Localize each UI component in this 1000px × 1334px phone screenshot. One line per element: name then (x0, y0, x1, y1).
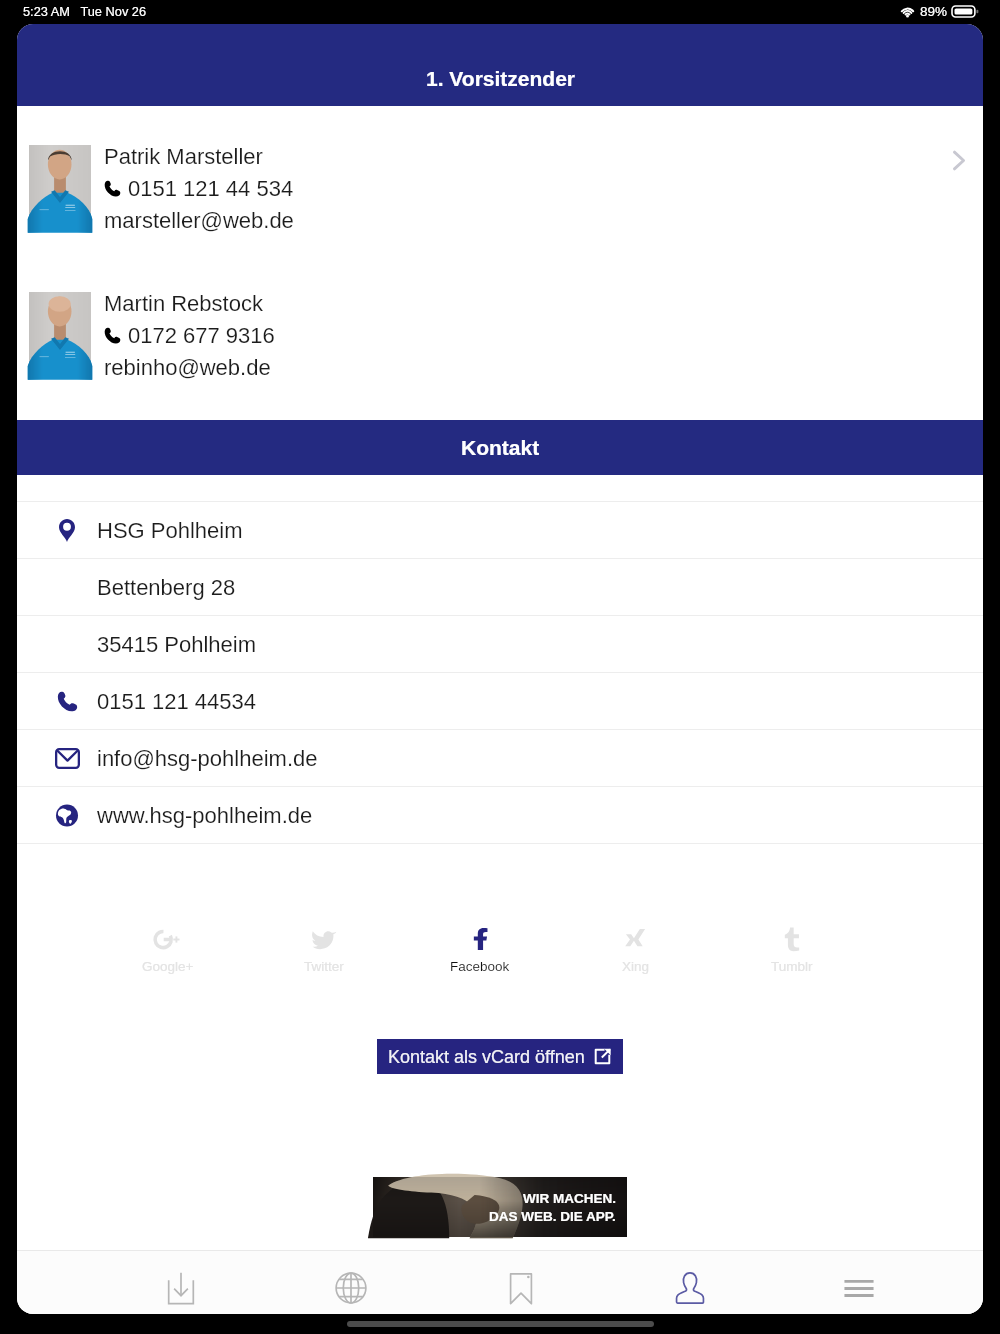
button[interactable]: Martin Rebstock (17, 292, 983, 382)
button[interactable]: Profil (605, 1256, 774, 1314)
staticText: www.hsg-pohlheim.de (97, 803, 313, 828)
button[interactable]: Twitter (246, 925, 402, 974)
staticText: Tumblr (771, 959, 813, 974)
button[interactable]: Details öffnen (923, 145, 983, 235)
button[interactable]: Patrik Marsteller (17, 145, 983, 235)
staticText: WIR MACHEN. (523, 1191, 616, 1206)
button[interactable]: Bettenberg 28 (17, 559, 983, 615)
staticText: 35415 Pohlheim (97, 632, 257, 657)
staticText: HSG Pohlheim (97, 518, 243, 543)
button[interactable]: Facebook (402, 925, 558, 974)
button[interactable]: Downloads (96, 1256, 266, 1314)
staticText: Bettenberg 28 (97, 575, 236, 600)
button[interactable]: 0151 121 44534 (17, 673, 983, 729)
staticText: 89% (920, 4, 948, 19)
staticText: Martin Rebstock (104, 291, 263, 316)
staticText: 1. Vorsitzender (426, 67, 575, 90)
staticText: Xing (622, 959, 650, 974)
staticText: Kontakt als vCard öffnen (388, 1047, 585, 1067)
button[interactable]: Google+ (89, 925, 246, 974)
button[interactable]: HSG Pohlheim (17, 502, 983, 558)
staticText: Twitter (304, 959, 344, 974)
button[interactable]: Xing (558, 925, 714, 974)
staticText: Facebook (450, 959, 510, 974)
button[interactable]: Kontakt als vCard öffnen (377, 1039, 623, 1074)
staticText: 0151 121 44534 (97, 689, 257, 714)
staticText: 0172 677 9316 (128, 323, 275, 348)
button[interactable]: Advertisement (373, 1177, 627, 1237)
button[interactable]: Menü (774, 1256, 943, 1314)
staticText: info@hsg-pohlheim.de (97, 746, 318, 771)
staticText: Patrik Marsteller (104, 144, 263, 169)
button[interactable]: Browser (266, 1256, 436, 1314)
staticText: Google+ (142, 959, 194, 974)
button[interactable]: info@hsg-pohlheim.de (17, 730, 983, 786)
staticText: marsteller@web.de (104, 208, 294, 233)
button[interactable]: www.hsg-pohlheim.de (17, 787, 983, 843)
button[interactable]: Lesezeichen (436, 1256, 605, 1314)
button[interactable]: 35415 Pohlheim (17, 616, 983, 672)
button[interactable]: Tumblr (714, 925, 870, 974)
staticText: rebinho@web.de (104, 355, 271, 380)
staticText: 0151 121 44 534 (128, 176, 294, 201)
staticText: Kontakt (461, 436, 540, 459)
staticText: 5:23 AM Tue Nov 26 (23, 4, 147, 18)
staticText: DAS WEB. DIE APP. (489, 1209, 616, 1224)
